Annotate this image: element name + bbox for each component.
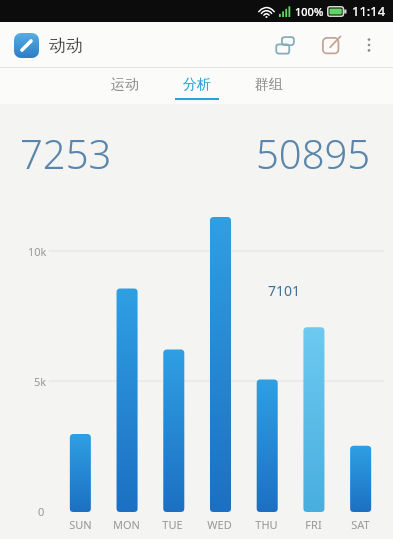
staticText: FRI [305,517,322,532]
button[interactable]: More options [353,29,385,61]
staticText: SAT [351,517,370,532]
staticText: 50895 [256,126,371,180]
staticText: MON [113,517,140,532]
staticText: SUN [69,517,92,532]
button[interactable]: 运动 [98,69,152,103]
staticText: 运动 [111,76,139,94]
staticText: 100% [295,4,324,19]
staticText: TUE [162,517,183,532]
staticText: 7101 [268,281,301,300]
button[interactable]: Edit [313,27,349,63]
button[interactable]: 群组 [242,69,296,103]
button[interactable]: 动动 [14,33,87,58]
staticText: 5k [34,374,47,389]
staticText: 11:14 [352,2,386,20]
staticText: THU [255,517,278,532]
staticText: 分析 [183,76,211,94]
button[interactable]: Share [267,27,303,63]
staticText: 10k [28,244,47,259]
staticText: WED [207,517,232,532]
staticText: 0 [38,504,45,519]
staticText: 7253 [20,126,112,180]
button[interactable]: 分析 [170,69,224,103]
staticText: 动动 [49,35,83,56]
staticText: 群组 [255,76,283,94]
